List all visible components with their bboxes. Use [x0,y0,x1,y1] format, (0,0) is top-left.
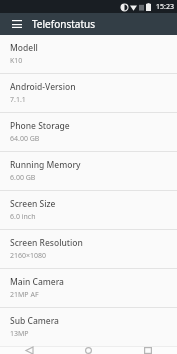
button[interactable]: Home [59,347,118,354]
staticText: Running Memory [10,159,81,171]
staticText: Telefonstatus [32,17,95,31]
staticText: 15:23 [156,2,174,12]
button[interactable]: Screen Size [0,191,177,229]
button[interactable]: Sub Camera [0,308,177,346]
staticText: Phone Storage [10,120,70,132]
staticText: 64.00 GB [10,134,40,144]
button[interactable]: Running Memory [0,152,177,190]
staticText: 6.00 GB [10,173,36,183]
staticText: Main Camera [10,276,64,288]
staticText: 2160×1080 [10,251,47,261]
staticText: 6.0 inch [10,212,36,222]
button[interactable]: Back [0,347,59,354]
staticText: 7.1.1 [10,95,26,105]
staticText: Sub Camera [10,315,59,327]
button[interactable]: Recent apps [118,347,177,354]
button[interactable]: Main Camera [0,269,177,307]
staticText: K10 [10,56,23,66]
button[interactable]: Modell [0,35,177,73]
staticText: 21MP AF [10,290,39,300]
staticText: 13MP [10,329,29,339]
staticText: Android-Version [10,81,76,93]
staticText: Modell [10,42,38,54]
button[interactable]: Screen Resolution [0,230,177,268]
staticText: Screen Size [10,198,56,210]
staticText: Screen Resolution [10,237,83,249]
button[interactable]: Open navigation menu [8,15,26,33]
button[interactable]: Phone Storage [0,113,177,151]
button[interactable]: Android-Version [0,74,177,112]
